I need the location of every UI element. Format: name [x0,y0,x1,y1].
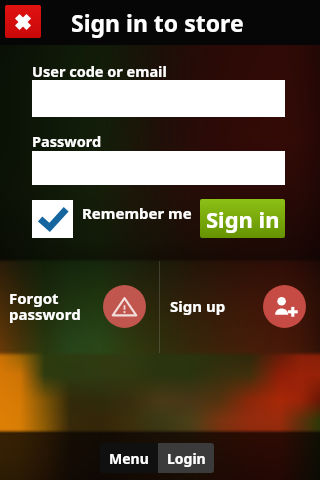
staticText: User code or email [32,61,167,81]
staticText: Forgot password [9,288,81,324]
button[interactable]: Close [5,5,41,38]
button[interactable]: Login [158,443,214,473]
button[interactable]: Sign in [200,199,285,238]
staticText: Menu [109,449,149,468]
button[interactable]: Remember me checkbox [32,200,73,238]
button[interactable]: Forgot password [0,261,160,353]
staticText: Login [167,449,206,468]
button[interactable]: Sign up [160,261,320,353]
staticText: Password [32,131,102,151]
staticText: Sign in [206,204,280,234]
staticText: Remember me [82,203,192,223]
staticText: Sign up [170,296,226,316]
button[interactable]: Menu [100,443,158,473]
staticText: Sign in to store [71,7,244,38]
